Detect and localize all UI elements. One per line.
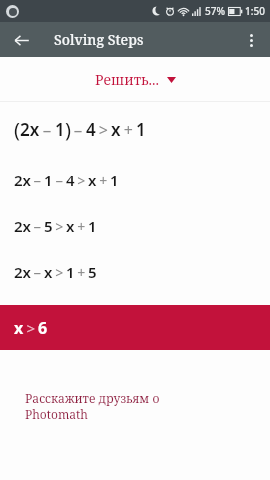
staticText: + bbox=[75, 217, 88, 236]
staticText: 2x bbox=[20, 118, 40, 141]
staticText: 6 bbox=[38, 317, 48, 339]
button[interactable]: Расскажите друзьям о Photomath bbox=[0, 390, 270, 423]
staticText: – bbox=[31, 216, 44, 236]
staticText: 2x bbox=[14, 170, 31, 190]
staticText: 2x bbox=[14, 216, 31, 236]
staticText: 4 bbox=[86, 118, 96, 141]
staticText: ) bbox=[65, 116, 71, 143]
staticText: + bbox=[97, 171, 110, 190]
staticText: 1 bbox=[44, 170, 53, 190]
button[interactable]: Решить... bbox=[0, 57, 270, 101]
staticText: ( bbox=[14, 116, 20, 143]
staticText: x bbox=[88, 170, 97, 190]
staticText: – bbox=[40, 118, 55, 141]
staticText: – bbox=[71, 118, 86, 141]
staticText: – bbox=[31, 170, 44, 190]
staticText: Решить... bbox=[95, 70, 160, 89]
button[interactable]: 2x bbox=[14, 262, 270, 282]
staticText: 1:50 bbox=[245, 4, 265, 18]
staticText: 1 bbox=[88, 216, 97, 236]
staticText: 2x bbox=[14, 262, 31, 282]
staticText: Solving Steps bbox=[54, 30, 144, 49]
staticText: 1 bbox=[136, 118, 146, 141]
staticText: + bbox=[75, 263, 88, 282]
staticText: 5 bbox=[44, 216, 53, 236]
staticText: – bbox=[31, 262, 44, 282]
staticText: x bbox=[44, 262, 53, 282]
button[interactable]: ( bbox=[14, 116, 270, 143]
staticText: 1 bbox=[110, 170, 119, 190]
staticText: Расскажите друзьям о Photomath bbox=[25, 390, 160, 423]
button[interactable]: More options bbox=[236, 25, 266, 55]
staticText: 5 bbox=[88, 262, 97, 282]
staticText: 1 bbox=[55, 118, 65, 141]
staticText: + bbox=[121, 119, 136, 141]
staticText: x bbox=[66, 216, 75, 236]
button[interactable]: 2x bbox=[14, 170, 270, 190]
staticText: 57% bbox=[205, 4, 225, 18]
staticText: 1 bbox=[66, 262, 75, 282]
button[interactable]: 2x bbox=[14, 216, 270, 236]
button[interactable]: x bbox=[0, 305, 270, 350]
staticText: > bbox=[24, 318, 38, 338]
staticText: x bbox=[111, 118, 121, 141]
staticText: > bbox=[53, 263, 66, 282]
staticText: – bbox=[53, 170, 66, 190]
staticText: > bbox=[96, 119, 111, 141]
button[interactable]: Back bbox=[6, 25, 36, 55]
staticText: 4 bbox=[66, 170, 75, 190]
staticText: x bbox=[14, 317, 24, 339]
staticText: > bbox=[75, 171, 88, 190]
staticText: > bbox=[53, 217, 66, 236]
